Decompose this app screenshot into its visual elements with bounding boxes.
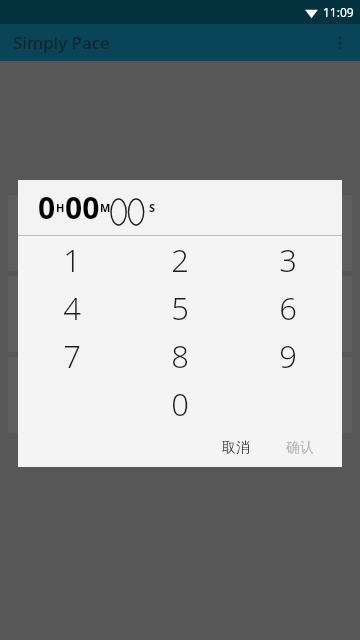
button[interactable]: 3 [234, 236, 342, 284]
button[interactable]: 5 [126, 284, 234, 332]
staticText: H [56, 200, 65, 215]
button[interactable] [8, 195, 352, 271]
staticText: 确认 [286, 439, 314, 457]
staticText: 4 [63, 287, 81, 329]
button[interactable]: 8 [126, 332, 234, 380]
button[interactable]: 6 [234, 284, 342, 332]
staticText: 00 [65, 187, 100, 228]
button[interactable] [8, 357, 352, 433]
staticText: 5 [171, 287, 189, 329]
staticText: 6 [279, 287, 297, 329]
staticText: 3 [279, 239, 297, 281]
staticText: 0 [38, 187, 56, 228]
button[interactable]: 1 [18, 236, 126, 284]
staticText: 7 [63, 335, 81, 377]
button[interactable]: 0 [126, 380, 234, 428]
button[interactable]: 确认 [272, 431, 328, 465]
staticText: 0 [171, 383, 189, 425]
staticText: Simply Pace [13, 31, 110, 54]
button[interactable]: 7 [18, 332, 126, 380]
button[interactable] [8, 276, 352, 352]
staticText: 取消 [222, 439, 250, 457]
staticText: 8 [171, 335, 189, 377]
staticText: M [100, 200, 111, 215]
button[interactable]: 取消 [208, 431, 264, 465]
staticText: 1 [63, 239, 81, 281]
button[interactable]: 9 [234, 332, 342, 380]
button[interactable]: 4 [18, 284, 126, 332]
button[interactable]: 2 [126, 236, 234, 284]
button[interactable]: More options [320, 24, 360, 61]
staticText: S [149, 200, 156, 215]
staticText: 2 [171, 239, 189, 281]
staticText: 11:09 [323, 4, 354, 20]
staticText: 9 [279, 335, 297, 377]
